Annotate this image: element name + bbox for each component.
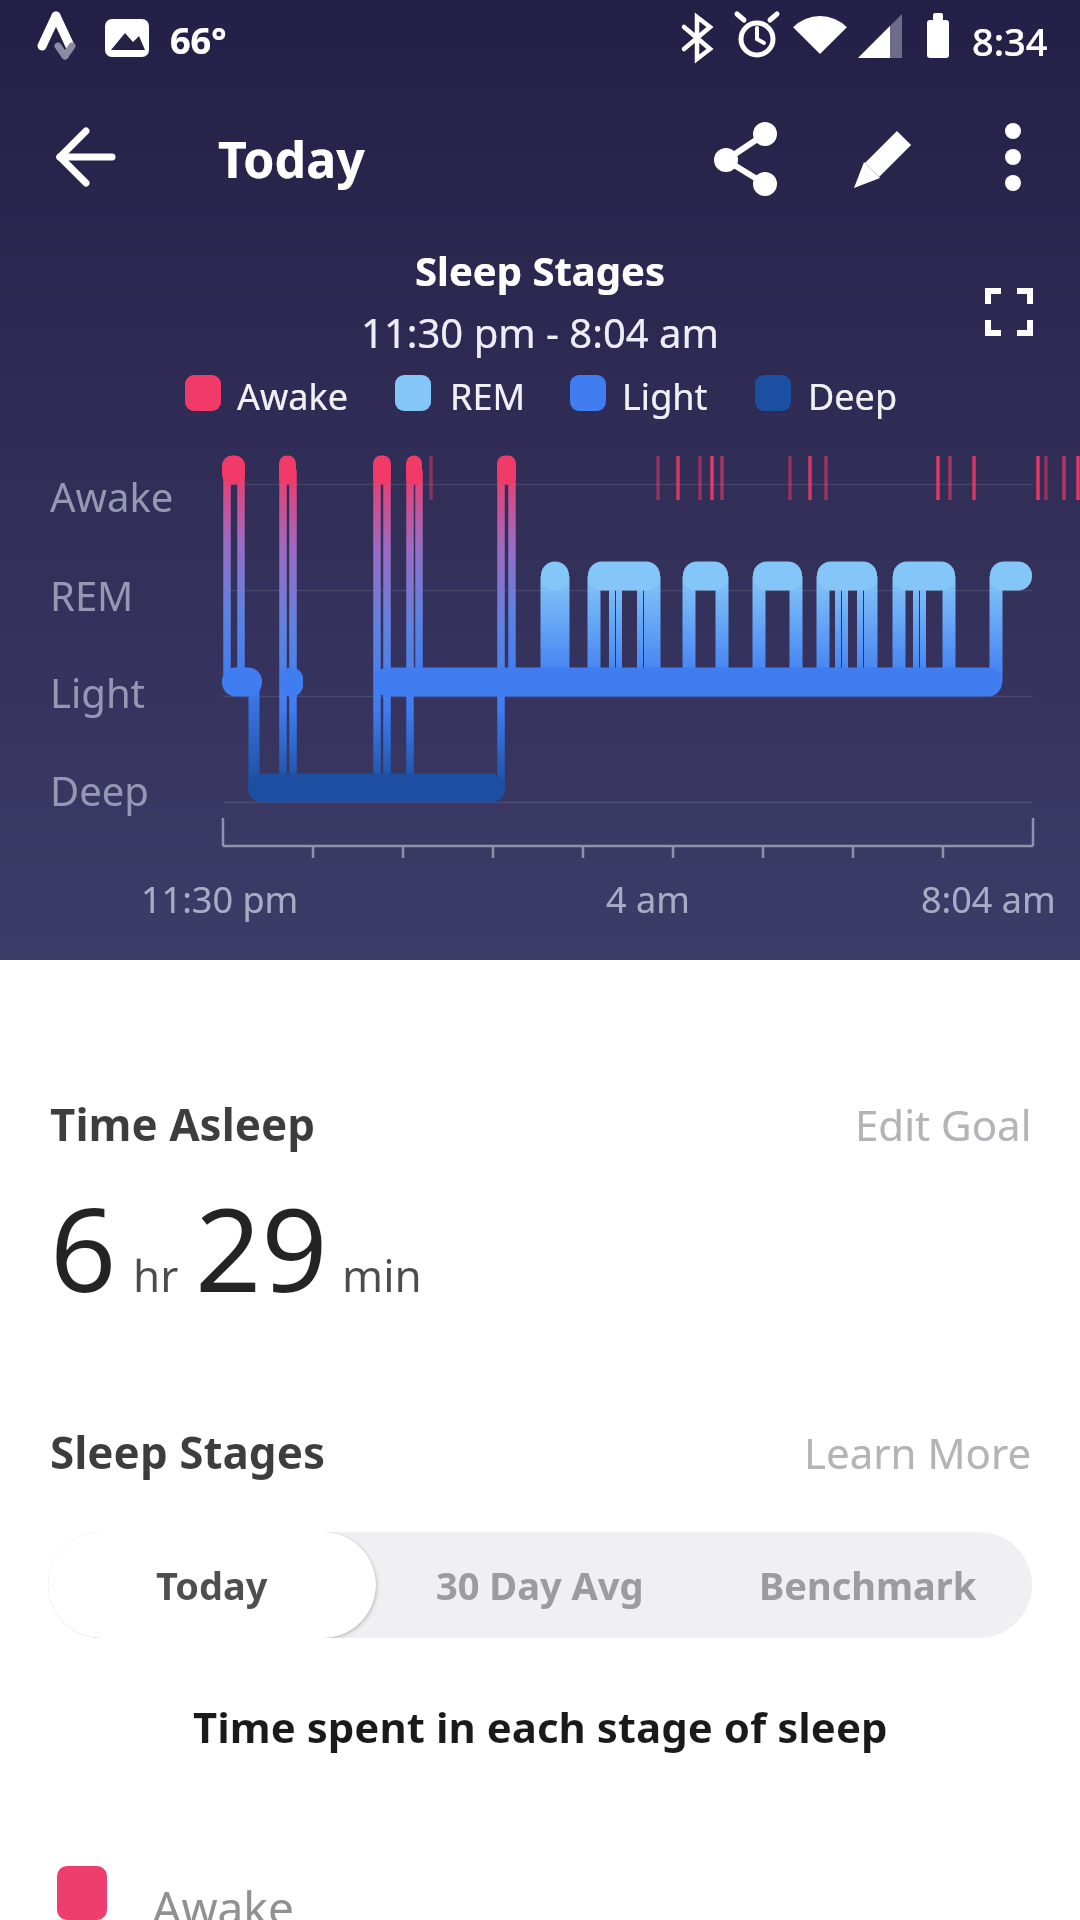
staticText: 4 am — [606, 875, 690, 924]
button[interactable]: Awake — [0, 1846, 1080, 1920]
staticText: 30 Day Avg — [436, 1559, 644, 1611]
staticText: 66° — [170, 16, 227, 65]
staticText: 6 — [50, 1168, 117, 1326]
staticText: Awake — [237, 372, 349, 421]
staticText: Today — [218, 125, 365, 193]
staticText: Time Asleep — [50, 1094, 316, 1154]
button[interactable]: Today — [48, 1532, 376, 1638]
staticText: 8:04 am — [921, 875, 1056, 924]
button[interactable]: Edit Goal — [855, 1096, 1032, 1153]
staticText: Awake — [50, 469, 174, 523]
staticText: Sleep Stages — [50, 1422, 325, 1482]
button[interactable] — [40, 112, 130, 202]
staticText: Light — [50, 665, 146, 719]
staticText: Sleep Stages — [415, 243, 665, 297]
staticText: 29 — [195, 1168, 328, 1326]
button[interactable] — [968, 112, 1058, 202]
button[interactable]: Benchmark — [704, 1532, 1032, 1638]
staticText: REM — [450, 372, 526, 421]
button[interactable] — [840, 112, 930, 202]
staticText: REM — [50, 568, 134, 622]
staticText: Deep — [808, 372, 898, 421]
staticText: Today — [156, 1559, 268, 1611]
staticText: Edit Goal — [855, 1096, 1032, 1153]
staticText: 11:30 pm — [141, 875, 299, 924]
staticText: Awake — [152, 1876, 294, 1920]
staticText: min — [342, 1245, 422, 1305]
button[interactable]: 30 Day Avg — [376, 1532, 704, 1638]
staticText: Learn More — [804, 1424, 1032, 1481]
staticText: Light — [622, 372, 708, 421]
staticText: Deep — [50, 763, 149, 817]
staticText: Benchmark — [759, 1559, 977, 1611]
button[interactable] — [700, 112, 790, 202]
button[interactable]: Learn More — [804, 1424, 1032, 1481]
staticText: hr — [133, 1245, 179, 1305]
staticText: 8:34 — [972, 15, 1048, 67]
staticText: 11:30 pm - 8:04 am — [361, 305, 719, 359]
button[interactable] — [970, 275, 1046, 351]
staticText: Time spent in each stage of sleep — [193, 1698, 888, 1755]
